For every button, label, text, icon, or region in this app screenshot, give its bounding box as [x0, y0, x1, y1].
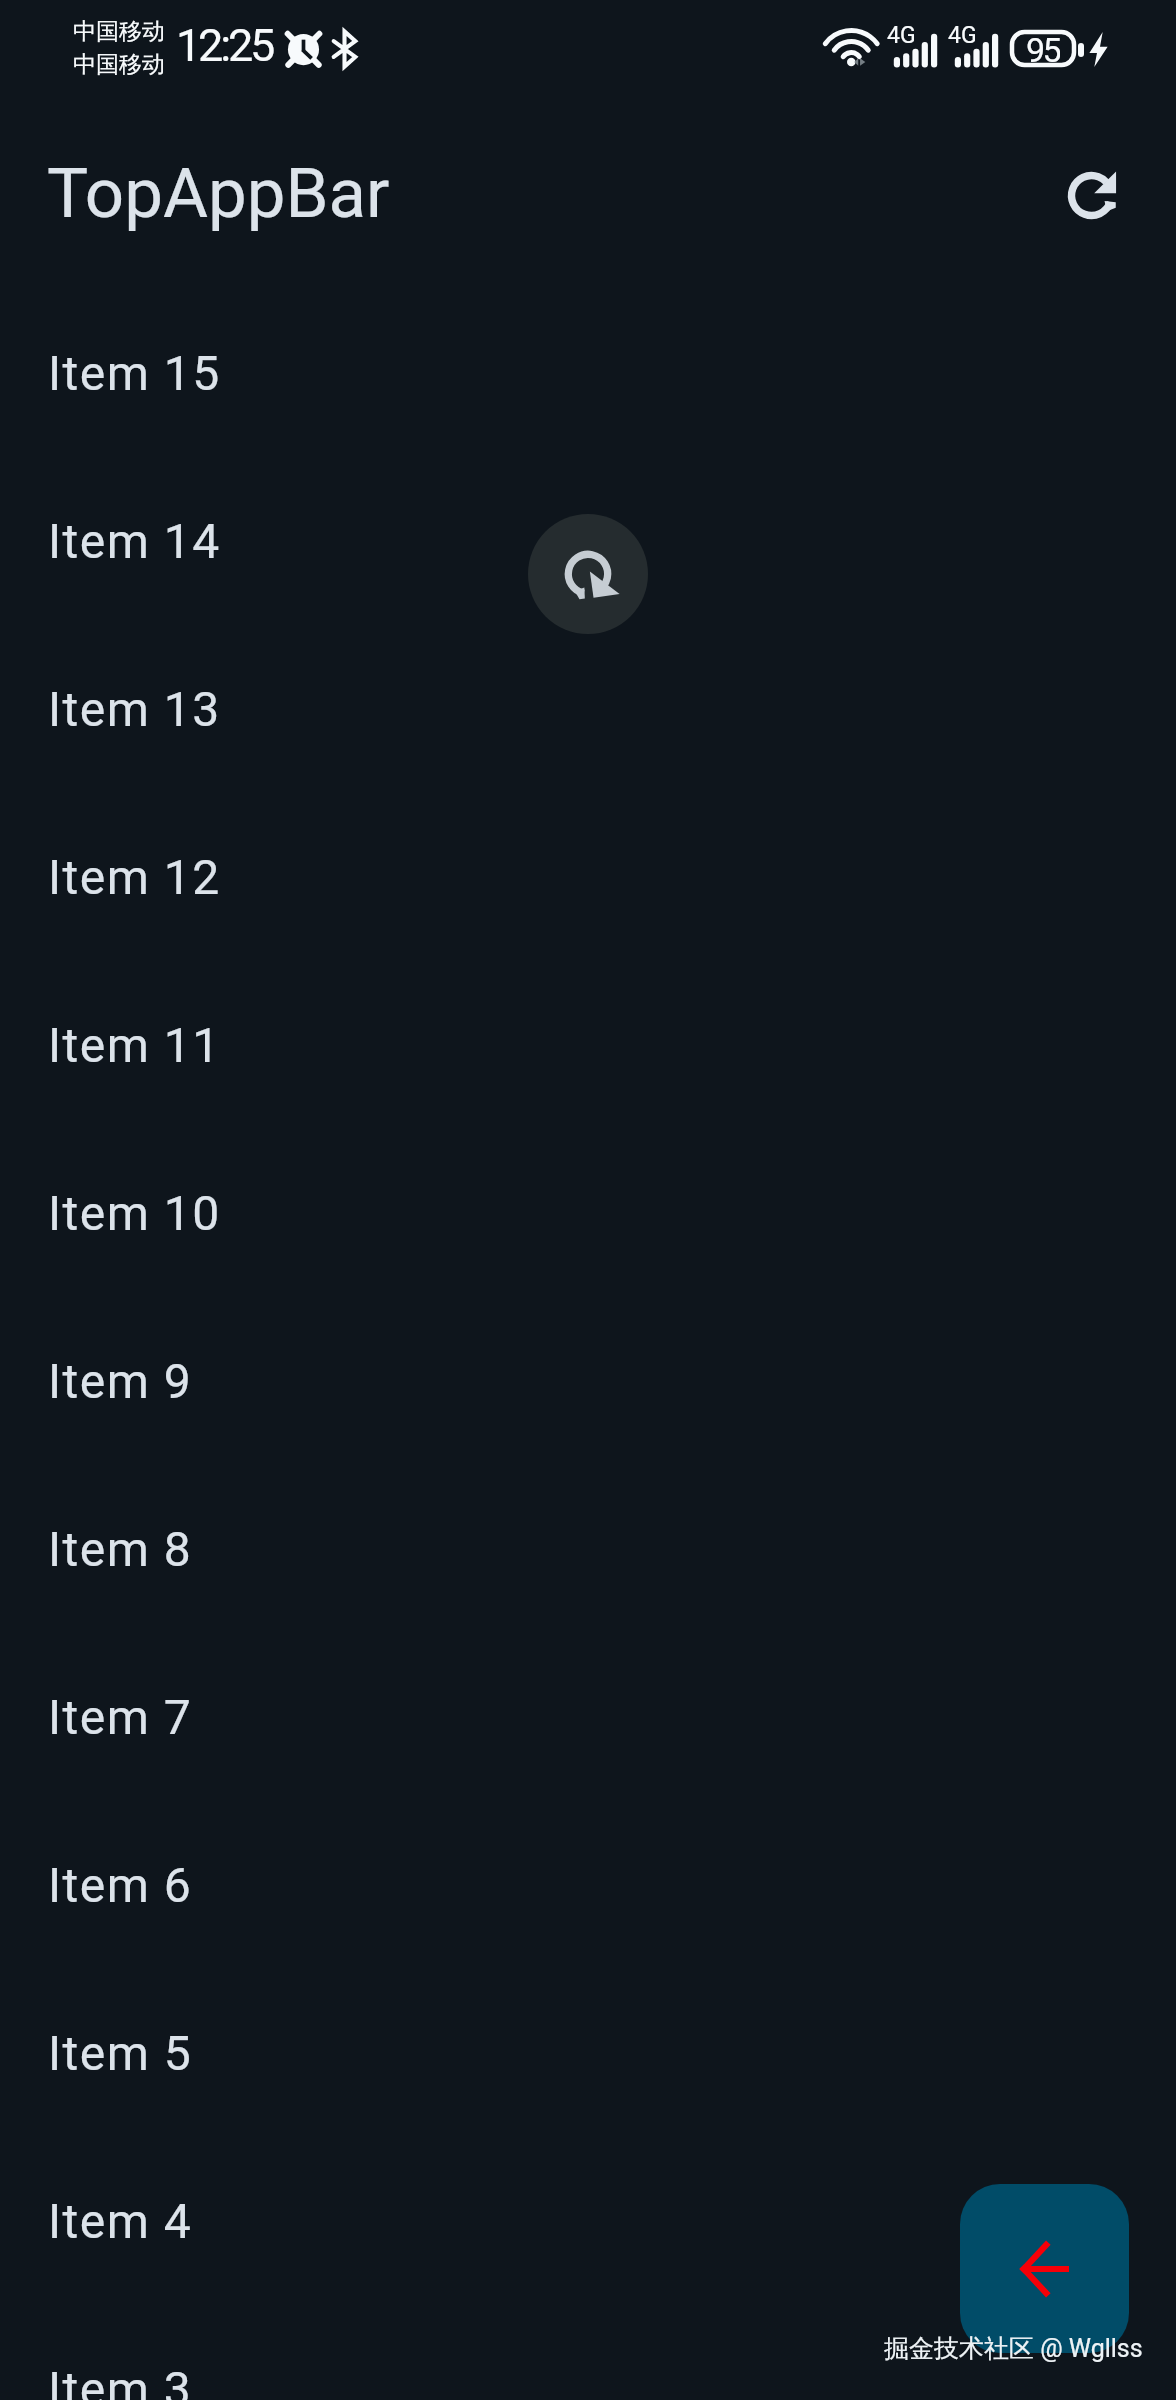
- button[interactable]: Item 3: [0, 2305, 1176, 2400]
- button[interactable]: Item 9: [0, 1297, 1176, 1465]
- staticText: Item 9: [48, 1353, 193, 1409]
- staticText: 4G: [948, 22, 977, 49]
- staticText: 中国移动: [73, 50, 165, 79]
- staticText: Item 11: [48, 1017, 221, 1073]
- staticText: TopAppBar: [47, 153, 390, 234]
- staticText: Item 6: [48, 1857, 193, 1913]
- staticText: Item 15: [48, 345, 221, 401]
- button[interactable]: Back: [960, 2184, 1129, 2353]
- staticText: Item 4: [48, 2193, 193, 2249]
- staticText: 中国移动: [73, 17, 165, 46]
- staticText: Item 14: [48, 513, 221, 569]
- button[interactable]: Item 11: [0, 961, 1176, 1129]
- button[interactable]: Item 12: [0, 793, 1176, 961]
- staticText: 95: [1026, 30, 1060, 67]
- staticText: Item 13: [48, 681, 221, 737]
- button[interactable]: Item 10: [0, 1129, 1176, 1297]
- staticText: Item 8: [48, 1521, 193, 1577]
- staticText: 掘金技术社区 @ Wgllss: [884, 2333, 1143, 2364]
- button[interactable]: Item 15: [0, 289, 1176, 457]
- staticText: 4G: [887, 22, 916, 49]
- staticText: Item 7: [48, 1689, 193, 1745]
- button[interactable]: Item 5: [0, 1969, 1176, 2137]
- staticText: Item 10: [48, 1185, 221, 1241]
- staticText: Item 12: [48, 849, 221, 905]
- button[interactable]: Item 7: [0, 1633, 1176, 1801]
- button[interactable]: Item 13: [0, 625, 1176, 793]
- staticText: 12:25: [176, 19, 273, 72]
- button[interactable]: Item 4: [0, 2137, 1176, 2305]
- button[interactable]: Item 14: [0, 457, 1176, 625]
- staticText: Item 5: [48, 2025, 193, 2081]
- button[interactable]: Item 8: [0, 1465, 1176, 1633]
- staticText: Item 3: [48, 2361, 193, 2400]
- button[interactable]: Refresh: [1043, 147, 1139, 243]
- button[interactable]: Item 6: [0, 1801, 1176, 1969]
